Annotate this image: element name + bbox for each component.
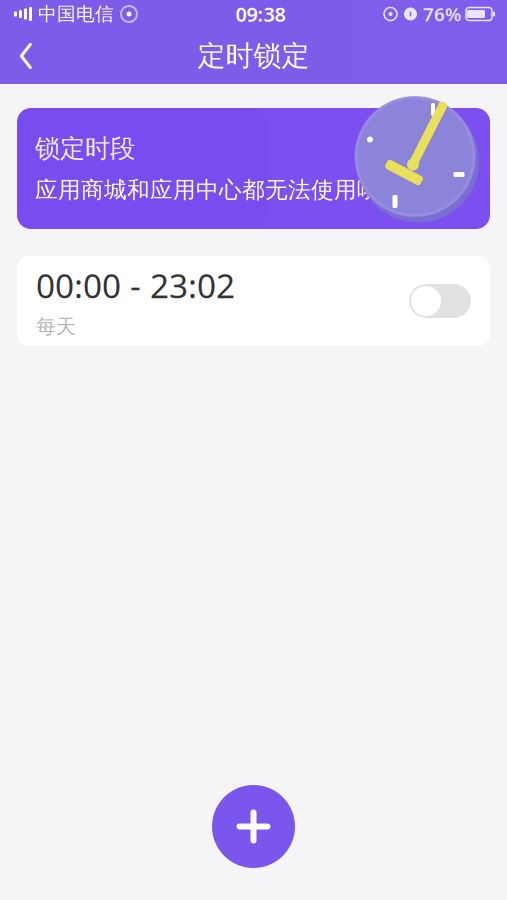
- staticText: 76%: [423, 2, 461, 26]
- staticText: 锁定时段: [35, 133, 135, 164]
- button[interactable]: 返回: [0, 28, 52, 84]
- button[interactable]: 00:00 - 23:02: [17, 256, 490, 346]
- staticText: 定时锁定: [197, 39, 309, 73]
- staticText: 09:38: [235, 1, 285, 27]
- staticText: 中国电信: [38, 2, 114, 25]
- button[interactable]: 添加锁定时段: [212, 785, 295, 868]
- staticText: 00:00 - 23:02: [36, 263, 235, 307]
- staticText: 应用商城和应用中心都无法使用哦: [35, 176, 380, 204]
- staticText: 每天: [36, 314, 76, 339]
